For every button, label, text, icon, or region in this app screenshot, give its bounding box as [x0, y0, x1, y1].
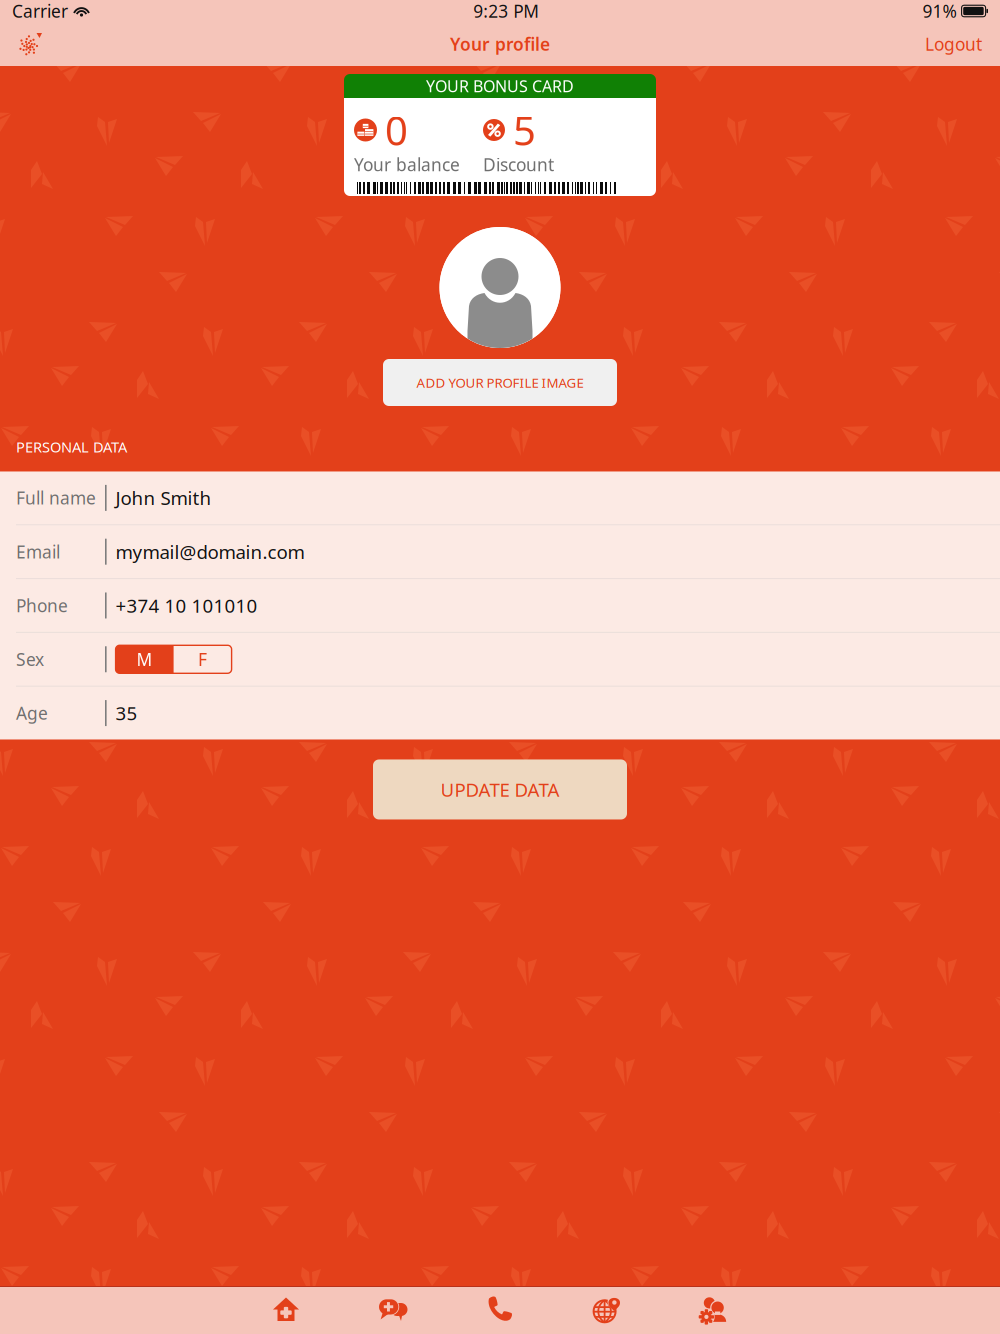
staticText: John Smith	[116, 485, 212, 510]
staticText: F	[198, 648, 207, 671]
button[interactable]: M	[116, 645, 174, 673]
staticText: Age	[16, 702, 48, 725]
button[interactable]: Map	[553, 1287, 660, 1334]
button[interactable]: Clinics	[232, 1287, 339, 1334]
button[interactable]: Chat	[339, 1287, 446, 1334]
staticText: Sex	[16, 648, 44, 671]
staticText: Discount	[483, 153, 554, 176]
staticText: PERSONAL DATA	[16, 437, 127, 456]
staticText: Your profile	[450, 32, 550, 55]
staticText: 5	[513, 103, 536, 156]
staticText: Your balance	[354, 153, 460, 176]
button[interactable]: Menu	[12, 27, 50, 61]
staticText: ADD YOUR PROFILE IMAGE	[416, 374, 583, 391]
staticText: M	[137, 648, 153, 671]
button[interactable]: Call	[446, 1287, 553, 1334]
staticText: Phone	[16, 594, 68, 617]
staticText: Logout	[925, 32, 982, 55]
button[interactable]: UPDATE DATA	[373, 759, 627, 819]
button[interactable]: ADD YOUR PROFILE IMAGE	[383, 359, 617, 406]
staticText: Email	[16, 540, 60, 563]
staticText: 35	[116, 701, 138, 725]
staticText: Full name	[16, 486, 96, 509]
staticText: 0	[385, 103, 408, 156]
staticText: 91%	[923, 0, 957, 22]
button[interactable]: Profile	[660, 1287, 767, 1334]
button[interactable]: F	[174, 645, 232, 673]
button[interactable]: Logout	[919, 28, 988, 59]
staticText: +374 10 101010	[116, 593, 258, 618]
staticText: mymail@domain.com	[116, 539, 305, 564]
staticText: UPDATE DATA	[440, 777, 559, 802]
staticText: YOUR BONUS CARD	[426, 75, 574, 97]
staticText: Carrier	[12, 0, 68, 22]
staticText: 9:23 PM	[473, 0, 539, 22]
